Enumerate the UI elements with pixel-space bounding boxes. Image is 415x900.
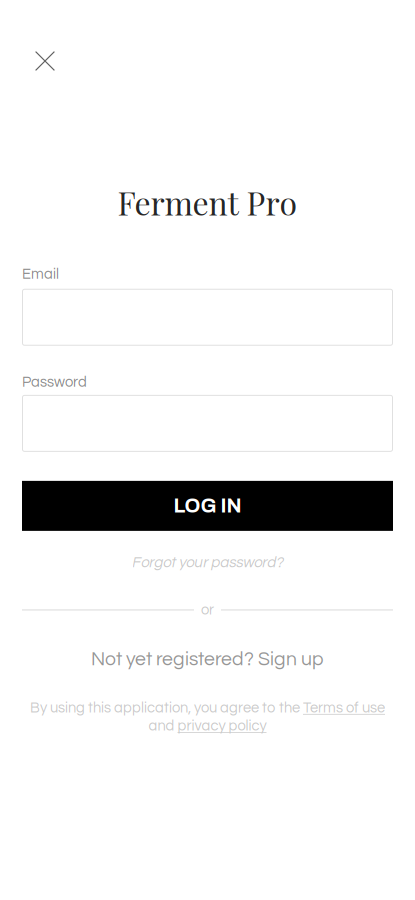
staticText: and	[148, 718, 177, 734]
staticText: Terms of use	[303, 700, 385, 715]
staticText: or	[201, 602, 214, 617]
staticText: Email	[22, 267, 59, 282]
button[interactable]: Terms of use	[303, 700, 385, 715]
staticText: By using this application, you agree to …	[30, 700, 303, 715]
button[interactable]: Not yet registered? Sign up	[0, 649, 415, 669]
staticText: Password	[22, 375, 87, 390]
button[interactable]: Close	[23, 39, 67, 83]
staticText: Forgot your password?	[131, 555, 283, 570]
staticText: LOG IN	[173, 495, 241, 517]
button[interactable]: privacy policy	[177, 718, 266, 734]
button[interactable]: LOG IN	[22, 481, 393, 531]
staticText: Ferment Pro	[117, 181, 297, 224]
staticText: privacy policy	[177, 718, 266, 734]
button[interactable]: Forgot your password?	[0, 555, 415, 570]
staticText: Not yet registered? Sign up	[91, 649, 324, 669]
